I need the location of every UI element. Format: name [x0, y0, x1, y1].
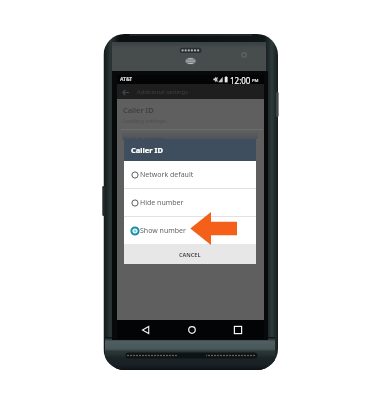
staticText: Network default [140, 170, 194, 180]
button[interactable]: Hide number [124, 189, 256, 216]
button[interactable]: Home [179, 320, 204, 339]
button[interactable]: Navigate up [119, 86, 131, 98]
button[interactable]: Recent apps [225, 320, 250, 339]
button[interactable]: Back [133, 320, 158, 339]
staticText: 12:00 [230, 75, 251, 84]
staticText: Hide number [140, 198, 184, 208]
staticText: Call barring [123, 134, 165, 144]
staticText: Loading settings... [123, 117, 171, 124]
staticText: Show number [140, 226, 186, 236]
button[interactable]: CANCEL [169, 247, 211, 262]
staticText: CANCEL [179, 251, 201, 258]
button[interactable]: Network default [124, 161, 256, 188]
button[interactable]: Show number [124, 217, 256, 244]
staticText: Additional settings [137, 88, 188, 96]
staticText: Caller ID [131, 145, 163, 155]
staticText: AT&T [120, 76, 133, 83]
staticText: Caller ID [123, 105, 154, 115]
staticText: PM [252, 78, 259, 84]
